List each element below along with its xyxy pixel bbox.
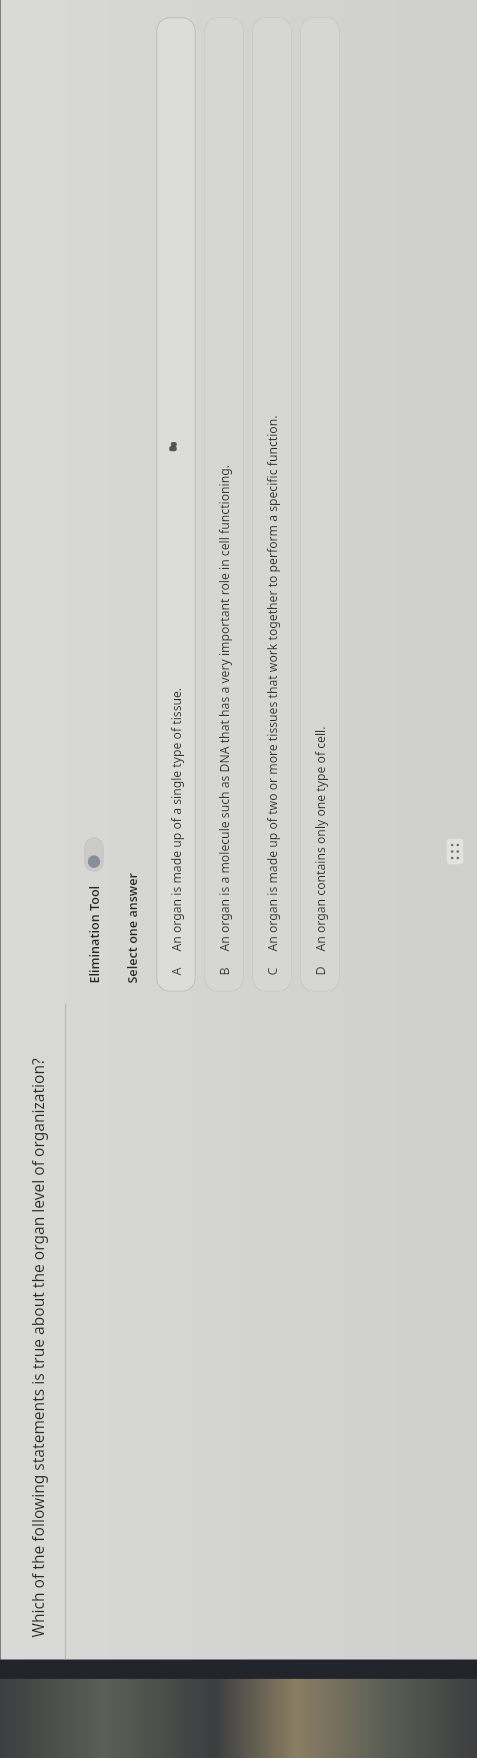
staticText: C <box>263 951 280 975</box>
button[interactable]: D <box>300 17 339 991</box>
button[interactable]: Elimination Tool toggle <box>84 837 103 871</box>
staticText: An organ is made up of a single type of … <box>167 687 184 951</box>
staticText: Select one answer <box>123 872 140 983</box>
staticText: D <box>311 951 328 975</box>
staticText: An organ is made up of two or more tissu… <box>263 414 280 951</box>
button[interactable]: A <box>156 17 195 991</box>
button[interactable]: C <box>252 17 291 991</box>
staticText: B <box>215 951 232 975</box>
staticText: A <box>167 951 184 975</box>
button[interactable]: Elimination Tool <box>80 835 107 985</box>
staticText: An organ contains only one type of cell. <box>311 725 328 951</box>
staticText: Which of the following statements is tru… <box>26 1057 47 1637</box>
staticText: Elimination Tool <box>85 885 102 983</box>
staticText: An organ is a molecule such as DNA that … <box>215 464 232 951</box>
button[interactable]: Drag handle <box>446 838 463 864</box>
button[interactable]: B <box>204 17 243 991</box>
